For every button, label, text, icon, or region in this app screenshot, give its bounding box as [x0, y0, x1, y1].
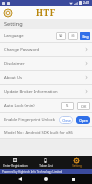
button[interactable]: Token List	[30, 156, 61, 169]
button[interactable]: 简	[68, 32, 78, 40]
button[interactable]: Change Password	[0, 43, 92, 56]
button[interactable]: Close	[59, 116, 73, 124]
staticText: Setting	[72, 164, 82, 168]
button[interactable]: Enter Registration	[0, 156, 30, 169]
staticText: About Us	[4, 75, 85, 81]
button[interactable]: Eng	[80, 32, 90, 40]
staticText: HTF	[36, 7, 56, 19]
button[interactable]: 繁	[56, 32, 66, 40]
staticText: Change Password	[4, 47, 85, 53]
button[interactable]: Back	[13, 174, 27, 184]
staticText: Language	[4, 33, 56, 39]
button[interactable]: Auto Lock (min)	[0, 99, 92, 112]
staticText: Enter Registration	[3, 164, 28, 168]
button[interactable]: Setting	[61, 156, 92, 169]
staticText: Model No : Android SDK built for x86	[4, 130, 73, 135]
staticText: Update Broker Information	[4, 89, 85, 95]
staticText: Setting	[4, 20, 23, 28]
staticText: Close	[62, 118, 71, 123]
button[interactable]: Disclaimer	[0, 57, 92, 70]
staticText: Enable Fingerprint Unlock	[4, 117, 59, 123]
button[interactable]: 5	[61, 102, 74, 110]
button[interactable]: HTF	[36, 7, 56, 19]
staticText: OK	[81, 104, 87, 109]
button[interactable]: Enable Fingerprint Unlock	[0, 113, 92, 126]
button[interactable]: OK	[77, 102, 90, 110]
staticText: Auto Lock (min)	[4, 103, 61, 109]
button[interactable]: Home	[39, 174, 53, 184]
staticText: 5	[66, 103, 69, 109]
button[interactable]: Open	[76, 116, 90, 124]
staticText: 2:41	[83, 1, 90, 5]
button[interactable]: About Us	[0, 71, 92, 84]
button[interactable]: Menu	[3, 8, 12, 17]
staticText: Token List	[39, 164, 53, 168]
button[interactable]: Language	[0, 29, 92, 42]
button[interactable]: Recents	[66, 174, 80, 184]
staticText: Powered by Hightech Info Technology Limi…	[2, 170, 63, 174]
staticText: Eng	[82, 34, 89, 39]
staticText: Disclaimer	[4, 61, 85, 67]
staticText: 繁	[59, 34, 63, 38]
staticText: Open	[79, 118, 88, 123]
button[interactable]: Update Broker Information	[0, 85, 92, 98]
staticText: 简	[71, 34, 75, 38]
